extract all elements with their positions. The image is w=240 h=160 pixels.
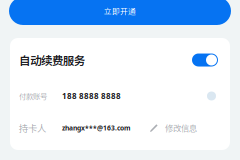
staticText: 立即开通 — [104, 5, 136, 17]
button[interactable]: 立即开通 — [9, 0, 231, 25]
button[interactable]: 修改信息 — [149, 122, 197, 134]
button[interactable]: 账号说明 — [207, 91, 216, 100]
staticText: 持卡人 — [19, 121, 46, 135]
staticText: zhangx***@163.com — [62, 124, 131, 132]
staticText: 付款账号 — [19, 91, 47, 101]
button[interactable]: 自动续费 — [192, 53, 218, 66]
staticText: 自动续费服务 — [19, 52, 85, 68]
staticText: 188 8888 8888 — [62, 91, 121, 101]
staticText: 修改信息 — [165, 122, 197, 134]
